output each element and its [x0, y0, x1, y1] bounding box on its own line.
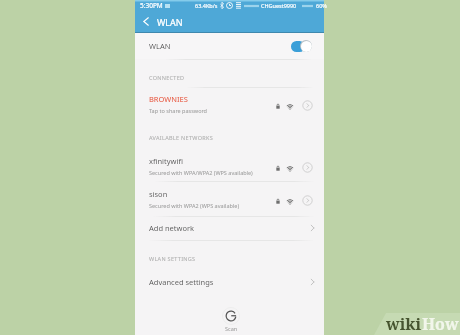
staticText: Tap to share password [149, 107, 208, 114]
staticText: CONNECTED [149, 74, 185, 81]
button[interactable]: Network details [302, 195, 313, 206]
staticText: Advanced settings [149, 277, 214, 287]
button[interactable]: Network details [302, 100, 313, 111]
staticText: Secured with WPA2 (WPS available) [149, 202, 240, 209]
staticText: CHGuest9990 [261, 2, 297, 9]
staticText: BROWNIES [149, 94, 188, 104]
button[interactable]: WLAN [135, 33, 324, 59]
staticText: wiki [386, 313, 422, 335]
staticText: How [422, 313, 459, 335]
staticText: Secured with WPA/WPA2 (WPS available) [149, 169, 253, 176]
button[interactable]: xfinitywifi [135, 154, 324, 181]
staticText: xfinitywifi [149, 156, 183, 166]
button[interactable]: Add network [135, 217, 324, 239]
staticText: 5:30PM [140, 1, 163, 10]
staticText: AVAILABLE NETWORKS [149, 134, 213, 141]
button[interactable]: BROWNIES [135, 92, 324, 119]
staticText: WLAN [149, 41, 171, 51]
button[interactable]: Back [139, 13, 153, 29]
button[interactable]: Scan [222, 307, 240, 332]
staticText: WLAN [157, 16, 183, 28]
staticText: 63.4Kb/s [195, 2, 218, 9]
staticText: 60% [316, 2, 327, 9]
button[interactable]: Advanced settings [135, 271, 324, 293]
staticText: WLAN SETTINGS [149, 255, 196, 262]
button[interactable]: sison [135, 187, 324, 214]
staticText: Add network [149, 223, 195, 233]
button[interactable]: Network details [302, 162, 313, 173]
staticText: Scan [225, 325, 238, 332]
staticText: sison [149, 189, 168, 199]
